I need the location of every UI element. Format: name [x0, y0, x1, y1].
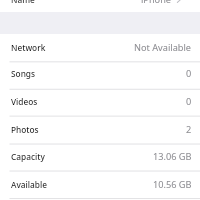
- staticText: 0: [186, 67, 192, 80]
- button[interactable]: Network: [0, 34, 200, 62]
- staticText: Capacity: [11, 151, 45, 162]
- staticText: 10.56 GB: [153, 178, 192, 191]
- staticText: Not Available: [134, 41, 192, 54]
- button[interactable]: Songs: [0, 61, 200, 88]
- other: Open: [177, 0, 181, 3]
- staticText: 2: [186, 123, 192, 136]
- button[interactable]: Photos: [0, 116, 200, 144]
- button[interactable]: [0, 198, 200, 200]
- staticText: iPhone: [141, 0, 172, 6]
- staticText: Available: [11, 179, 47, 190]
- button[interactable]: Available: [0, 171, 200, 199]
- staticText: 0: [186, 95, 192, 108]
- button[interactable]: Videos: [0, 89, 200, 116]
- staticText: Songs: [11, 68, 36, 79]
- button[interactable]: Capacity: [0, 144, 200, 171]
- staticText: Network: [11, 42, 46, 53]
- staticText: Videos: [11, 96, 38, 107]
- button[interactable]: Name: [0, 0, 200, 12]
- staticText: 13.06 GB: [153, 150, 192, 163]
- staticText: Name: [11, 0, 35, 5]
- staticText: Photos: [11, 124, 39, 135]
